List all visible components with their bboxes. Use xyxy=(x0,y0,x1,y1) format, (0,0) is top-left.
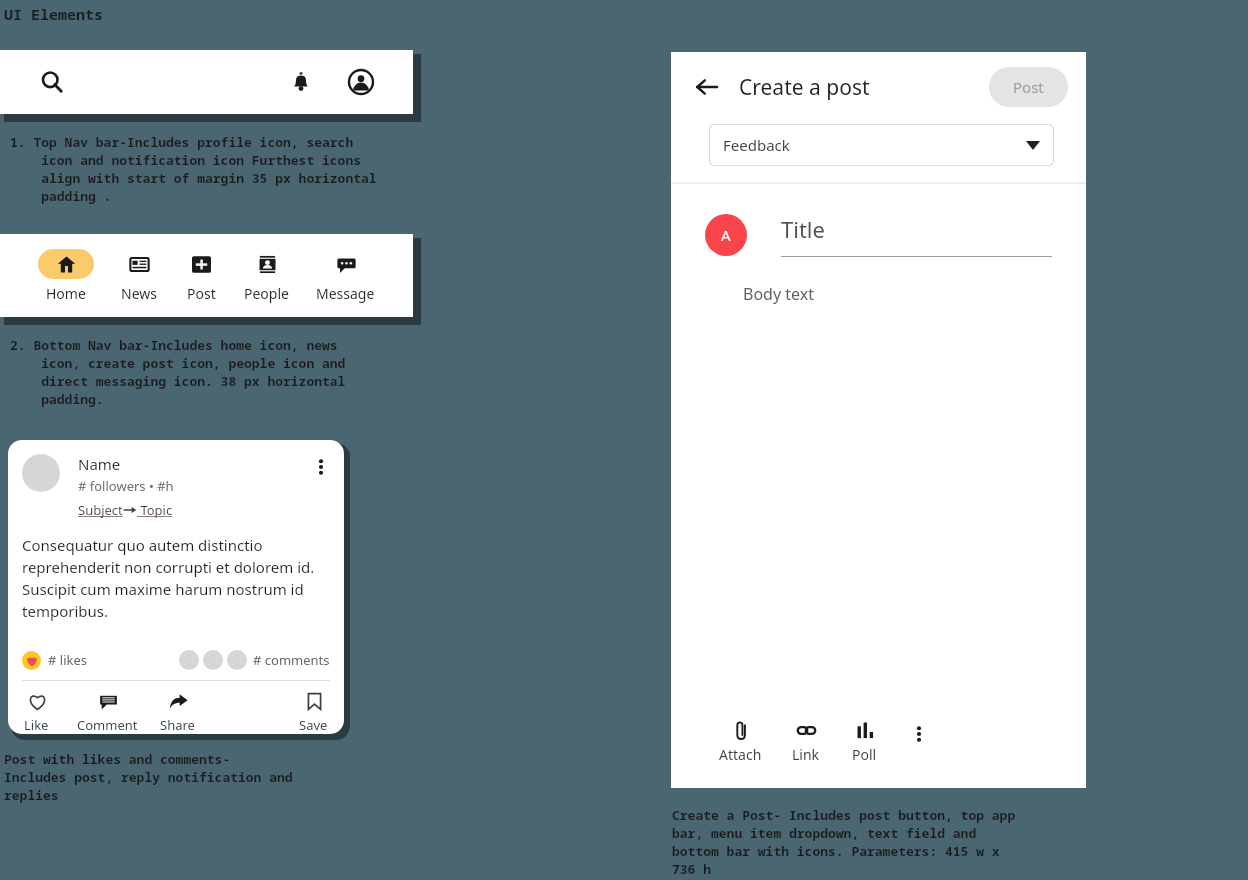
button[interactable]: Home xyxy=(38,249,94,303)
staticText: People xyxy=(244,284,289,303)
staticText: Message xyxy=(316,284,375,303)
staticText: Link xyxy=(792,745,820,764)
staticText: Create a post xyxy=(739,73,870,102)
staticText: News xyxy=(121,284,157,303)
button[interactable]: Post xyxy=(184,249,218,303)
button[interactable]: Poll xyxy=(852,718,877,764)
staticText: Poll xyxy=(852,745,877,764)
button[interactable]: Share xyxy=(160,689,195,734)
staticText: Like xyxy=(24,716,49,734)
button[interactable]: Profile xyxy=(344,65,378,99)
staticText: Feedback xyxy=(723,135,790,155)
button[interactable]: Like xyxy=(24,689,49,734)
button[interactable]: Link xyxy=(792,718,820,764)
button[interactable]: Message xyxy=(316,249,375,303)
staticText: # comments xyxy=(253,651,330,669)
staticText: Comment xyxy=(77,716,138,734)
staticText: Post xyxy=(1013,77,1044,97)
button[interactable]: News xyxy=(121,249,157,303)
staticText: Topic xyxy=(137,501,173,519)
staticText: Post xyxy=(187,284,216,303)
button[interactable]: Comment xyxy=(77,689,138,734)
button[interactable]: Back xyxy=(691,71,723,103)
button[interactable]: More options xyxy=(903,718,935,750)
staticText: Title xyxy=(781,214,825,244)
staticText: 2. Bottom Nav bar-Includes home icon, ne… xyxy=(10,336,346,408)
staticText: Attach xyxy=(719,745,762,764)
button[interactable]: Subject xyxy=(78,501,173,519)
staticText: Consequatur quo autem distinctio reprehe… xyxy=(22,535,330,622)
staticText: Create a Post- Includes post button, top… xyxy=(672,806,1016,878)
staticText: # followers • #h xyxy=(78,477,174,495)
staticText: # likes xyxy=(48,651,87,669)
button[interactable]: Feedback xyxy=(709,124,1054,166)
button[interactable]: Notifications xyxy=(284,65,318,99)
button[interactable]: More options xyxy=(308,454,334,480)
staticText: Body text xyxy=(743,283,814,305)
staticText: A xyxy=(721,225,731,245)
staticText: 1. Top Nav bar-Includes profile icon, se… xyxy=(10,133,377,205)
staticText: UI Elements xyxy=(4,4,104,24)
staticText: Share xyxy=(160,716,195,734)
staticText: Home xyxy=(46,284,86,303)
staticText: Subject xyxy=(78,501,123,519)
staticText: Post with likes and comments- Includes p… xyxy=(4,750,293,804)
button[interactable]: Search xyxy=(35,65,69,99)
button[interactable]: Save xyxy=(299,689,328,734)
button[interactable]: Attach xyxy=(719,718,762,764)
staticText: Name xyxy=(78,454,121,474)
button[interactable]: Post xyxy=(989,67,1068,107)
button[interactable]: People xyxy=(244,249,289,303)
staticText: Save xyxy=(299,716,328,734)
